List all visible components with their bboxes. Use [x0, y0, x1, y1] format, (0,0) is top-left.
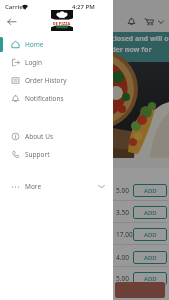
staticText: About Us — [25, 132, 54, 141]
staticText: 17.00 — [116, 230, 133, 239]
button[interactable]: More options — [155, 16, 166, 27]
button[interactable]: Home — [0, 35, 113, 53]
staticText: Support — [25, 150, 50, 159]
button[interactable]: About Us — [0, 127, 113, 145]
button[interactable]: Support — [0, 145, 113, 163]
button[interactable]: ADD — [133, 206, 167, 219]
button[interactable]: Notifications — [125, 15, 137, 27]
staticText: ADD — [144, 275, 157, 283]
staticText: 5.00 — [116, 186, 129, 195]
staticText: ADD — [144, 209, 157, 217]
button[interactable]: Back — [4, 16, 18, 28]
staticText: More — [25, 182, 42, 191]
button[interactable]: De Pizza logo — [51, 10, 73, 31]
staticText: ADD — [144, 254, 157, 262]
staticText: 5.00 — [116, 274, 129, 283]
staticText: DE PIZZA — [53, 21, 71, 26]
staticText: Notifications — [25, 94, 64, 103]
button[interactable]: Order History — [0, 71, 113, 89]
staticText: Home — [25, 40, 44, 49]
button[interactable]: Notifications — [0, 89, 113, 107]
staticText: Carrier — [5, 3, 26, 11]
button[interactable]: More — [0, 177, 113, 195]
staticText: ADD — [144, 187, 157, 195]
staticText: 3.50 — [116, 208, 129, 217]
button[interactable]: ADD — [133, 184, 167, 197]
staticText: The restaurant is closed and will open a… — [50, 34, 169, 54]
button[interactable] — [115, 282, 165, 298]
staticText: 4:27 PM — [72, 3, 95, 11]
button[interactable]: Login — [0, 53, 113, 71]
button[interactable]: ADD — [133, 251, 167, 264]
button[interactable]: ADD — [133, 228, 167, 241]
staticText: Order History — [25, 76, 67, 85]
button[interactable]: ADD — [133, 272, 167, 285]
button[interactable]: Cart — [143, 15, 155, 27]
staticText: ADD — [144, 231, 157, 239]
staticText: Login — [25, 58, 43, 67]
staticText: 4.00 — [116, 253, 129, 262]
